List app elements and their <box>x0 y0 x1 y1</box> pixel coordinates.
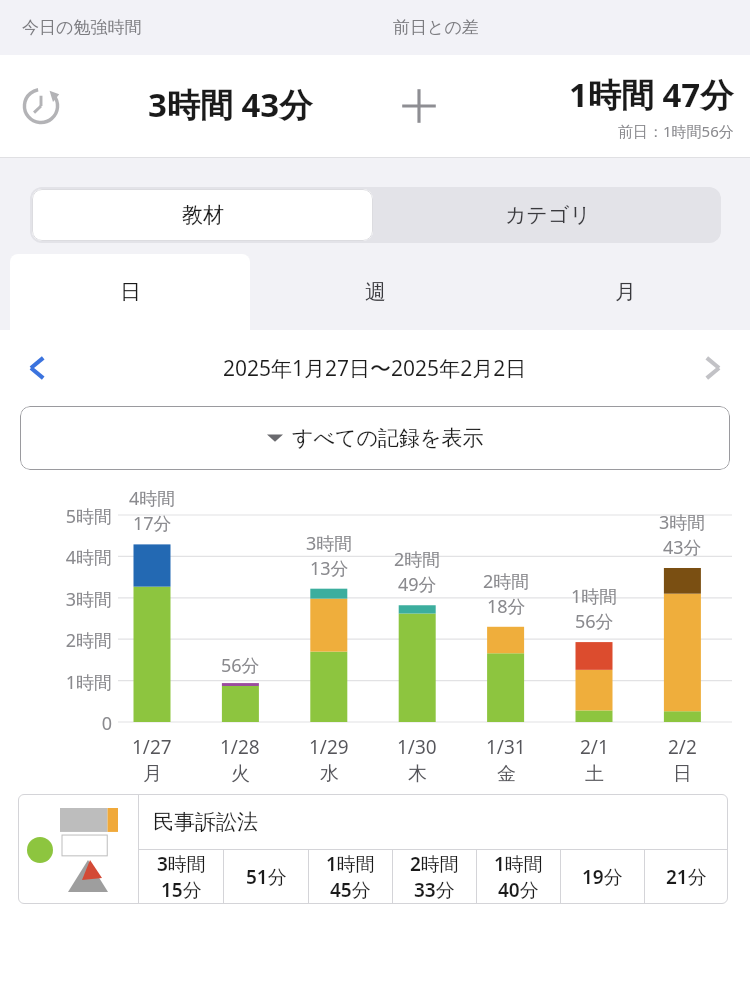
button[interactable]: 民事訴訟法 <box>18 794 728 904</box>
staticText: 13分 <box>310 556 349 581</box>
staticText: 15分 <box>161 877 202 903</box>
staticText: 21分 <box>666 864 707 890</box>
button[interactable]: History <box>18 83 64 129</box>
staticText: 1/30 <box>397 734 437 760</box>
staticText: 45分 <box>330 877 371 903</box>
staticText: 33分 <box>414 877 455 903</box>
staticText: 3時間 <box>36 587 112 612</box>
staticText: 1時間 <box>36 670 112 695</box>
staticText: 40分 <box>498 877 539 903</box>
staticText: 土 <box>585 762 604 786</box>
staticText: 水 <box>320 762 339 786</box>
staticText: 1/31 <box>486 734 526 760</box>
button[interactable]: Next week <box>690 344 738 392</box>
staticText: 0 <box>36 711 112 736</box>
staticText: 17分 <box>133 511 172 536</box>
staticText: 1時間 <box>494 851 543 877</box>
staticText: 1時間 47分 <box>569 72 734 117</box>
staticText: 5時間 <box>36 504 112 529</box>
staticText: 1/28 <box>220 734 260 760</box>
button[interactable]: Previous week <box>12 344 60 392</box>
staticText: 3時間 <box>306 531 353 556</box>
staticText: 3時間 <box>659 510 706 535</box>
staticText: 教材 <box>182 202 224 228</box>
staticText: 1/27 <box>132 734 172 760</box>
staticText: 月 <box>143 762 162 786</box>
staticText: 18分 <box>487 594 526 619</box>
staticText: 2時間 <box>394 547 441 572</box>
staticText: 4時間 <box>129 486 176 511</box>
staticText: 前日との差 <box>393 17 479 38</box>
staticText: 2時間 <box>410 851 459 877</box>
staticText: 4時間 <box>36 545 112 570</box>
staticText: 火 <box>231 762 250 786</box>
staticText: 2025年1月27日〜2025年2月2日 <box>223 354 527 383</box>
staticText: 日 <box>673 762 692 786</box>
staticText: 2時間 <box>483 569 530 594</box>
staticText: 金 <box>497 762 516 786</box>
staticText: 19分 <box>582 864 623 890</box>
staticText: 2/2 <box>668 734 697 760</box>
staticText: 民事訴訟法 <box>153 809 258 835</box>
staticText: 49分 <box>398 572 437 597</box>
button[interactable]: 教材 <box>32 189 373 241</box>
staticText: 1/29 <box>309 734 349 760</box>
staticText: 前日：1時間56分 <box>618 121 734 141</box>
staticText: 日 <box>120 279 141 305</box>
button[interactable]: 月 <box>500 254 750 330</box>
staticText: 木 <box>408 762 427 786</box>
staticText: 1時間 <box>326 851 375 877</box>
staticText: 1時間 <box>571 584 618 609</box>
staticText: カテゴリ <box>505 202 591 228</box>
staticText: 56分 <box>221 653 260 678</box>
staticText: 3時間 43分 <box>148 82 313 127</box>
staticText: 56分 <box>575 609 614 634</box>
staticText: 週 <box>365 279 386 305</box>
staticText: 月 <box>615 279 636 305</box>
button[interactable]: 日 <box>10 254 250 330</box>
staticText: 3時間 <box>157 851 206 877</box>
staticText: 2/1 <box>580 734 609 760</box>
button[interactable]: カテゴリ <box>375 187 721 243</box>
staticText: 今日の勉強時間 <box>22 17 142 38</box>
staticText: すべての記録を表示 <box>292 425 484 451</box>
staticText: 43分 <box>663 535 702 560</box>
staticText: 51分 <box>246 864 287 890</box>
button[interactable]: すべての記録を表示 <box>20 406 730 470</box>
button[interactable]: 週 <box>250 254 500 330</box>
staticText: 2時間 <box>36 628 112 653</box>
